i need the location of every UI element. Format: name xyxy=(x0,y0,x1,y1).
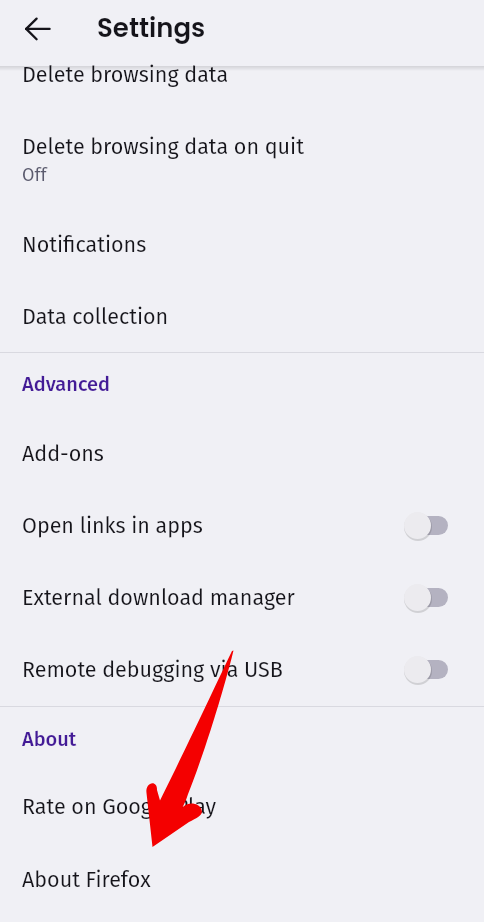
button[interactable]: Notifications xyxy=(0,200,484,272)
staticText: About Firefox xyxy=(22,867,151,893)
button[interactable]: About Firefox xyxy=(0,835,484,907)
staticText: Notifications xyxy=(22,232,147,258)
staticText: Rate on Google Play xyxy=(22,794,217,820)
staticText: Advanced xyxy=(22,372,110,396)
button[interactable]: Delete browsing data xyxy=(0,40,484,103)
button[interactable]: Remote debugging via USB xyxy=(0,626,484,706)
staticText: About xyxy=(22,727,77,751)
staticText: Remote debugging via USB xyxy=(22,657,283,683)
staticText: Off xyxy=(22,164,47,186)
staticText: Open links in apps xyxy=(22,513,203,539)
button[interactable]: Add-ons xyxy=(0,410,484,482)
staticText: Delete browsing data xyxy=(22,62,229,88)
staticText: External download manager xyxy=(22,585,295,611)
button[interactable]: Back xyxy=(14,5,62,53)
button[interactable]: Data collection xyxy=(0,272,484,352)
staticText: Data collection xyxy=(22,304,169,330)
button[interactable]: Delete browsing data on quit xyxy=(0,103,484,200)
button[interactable]: External download manager xyxy=(0,554,484,626)
staticText: Settings xyxy=(97,10,206,46)
staticText: Delete browsing data on quit xyxy=(22,134,304,160)
button[interactable]: Rate on Google Play xyxy=(0,763,484,835)
button[interactable]: Open links in apps xyxy=(0,482,484,554)
staticText: Add-ons xyxy=(22,441,104,467)
